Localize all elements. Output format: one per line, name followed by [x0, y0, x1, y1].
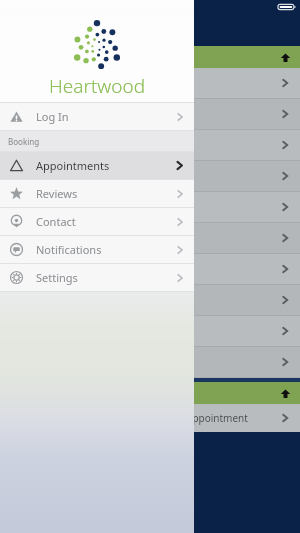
staticText: Contact — [36, 214, 76, 229]
staticText: Appointments — [36, 158, 110, 173]
staticText: Appointment — [186, 411, 248, 425]
button[interactable]: Collapse section — [0, 46, 300, 68]
button[interactable]: Log In — [0, 103, 194, 130]
button[interactable]: Appointment — [0, 404, 300, 432]
button[interactable]: List item — [0, 130, 300, 160]
button[interactable]: List item — [0, 161, 300, 191]
button[interactable]: List item — [0, 99, 300, 129]
staticText: Notifications — [36, 242, 102, 257]
button[interactable]: List item — [0, 285, 300, 315]
button[interactable]: List item — [0, 254, 300, 284]
button[interactable]: List item — [0, 347, 300, 377]
button[interactable]: Contact — [0, 208, 194, 235]
staticText: Heartwood — [49, 73, 146, 99]
button[interactable]: List item — [0, 223, 300, 253]
staticText: Booking — [8, 136, 40, 147]
button[interactable]: List item — [0, 192, 300, 222]
button[interactable]: Reviews — [0, 180, 194, 207]
staticText: Reviews — [36, 186, 78, 201]
staticText: Log In — [36, 109, 69, 124]
button[interactable]: Collapse section — [0, 382, 300, 404]
button[interactable]: Notifications — [0, 236, 194, 263]
button[interactable]: List item — [0, 316, 300, 346]
staticText: Settings — [36, 270, 78, 285]
button[interactable]: List item — [0, 68, 300, 98]
button[interactable]: Appointments — [0, 152, 194, 179]
button[interactable]: Settings — [0, 264, 194, 291]
